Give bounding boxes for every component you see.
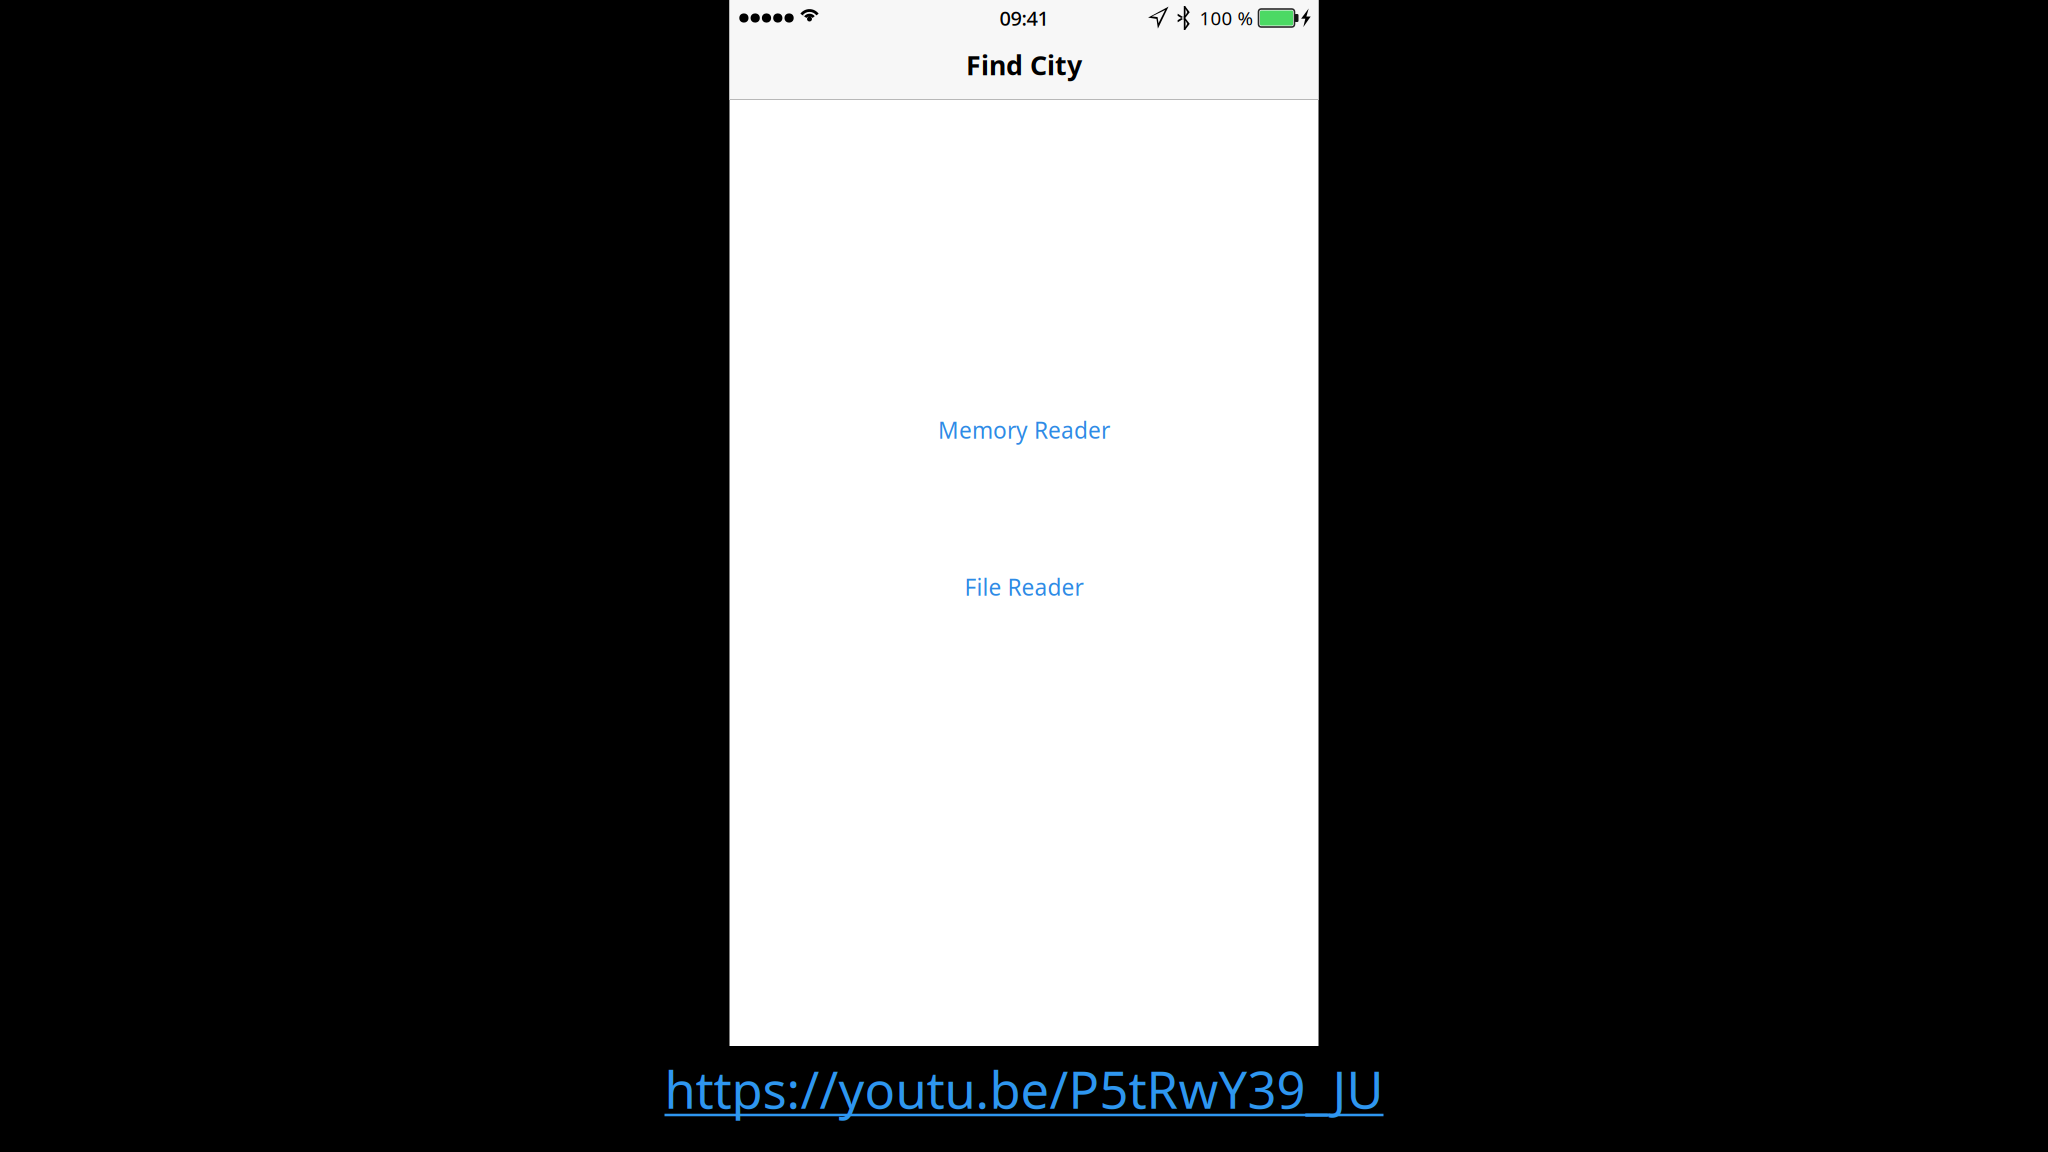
staticText: 09:41 — [999, 5, 1048, 31]
button[interactable]: Memory Reader — [729, 408, 1318, 452]
staticText: https://youtu.be/P5tRwY39_JU — [664, 1055, 1383, 1123]
button[interactable]: File Reader — [729, 565, 1318, 609]
staticText: File Reader — [964, 572, 1083, 602]
staticText: Find City — [966, 47, 1082, 83]
staticText: Memory Reader — [938, 415, 1110, 445]
button[interactable]: https://youtu.be/P5tRwY39_JU — [0, 1054, 2048, 1124]
staticText: 100 % — [1199, 6, 1253, 30]
